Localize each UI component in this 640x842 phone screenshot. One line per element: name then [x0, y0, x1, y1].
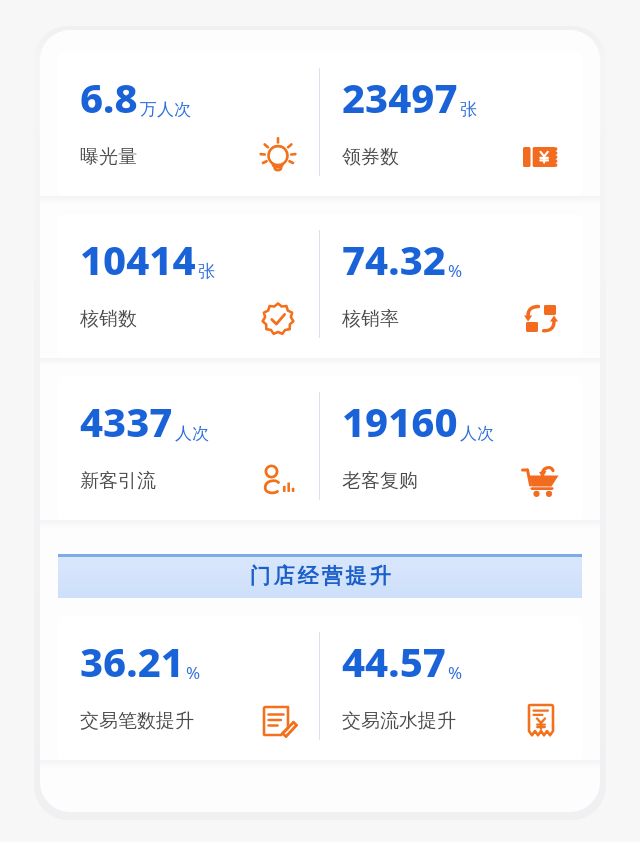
button[interactable]: 74.32: [320, 214, 582, 358]
staticText: 门店经营提升: [248, 563, 392, 589]
other: 核销数: [255, 296, 301, 342]
staticText: 10414: [80, 232, 196, 286]
staticText: 44.57: [342, 634, 446, 688]
other: 交易笔数提升: [255, 698, 301, 744]
staticText: 核销率: [342, 307, 399, 331]
staticText: 23497: [342, 70, 458, 124]
staticText: 老客复购: [342, 469, 418, 493]
staticText: %: [186, 661, 201, 684]
staticText: %: [448, 259, 463, 282]
staticText: 6.8: [80, 70, 138, 124]
other: 核销率: [518, 296, 564, 342]
button[interactable]: 36.21: [58, 616, 319, 760]
staticText: 曝光量: [80, 145, 137, 169]
staticText: 万人次: [140, 99, 191, 120]
staticText: 张: [198, 261, 215, 282]
other: 交易流水提升: [518, 698, 564, 744]
button[interactable]: 6.8: [58, 52, 319, 196]
button[interactable]: 10414: [58, 214, 319, 358]
staticText: 19160: [342, 394, 458, 448]
other: 老客复购: [518, 458, 564, 504]
staticText: 领券数: [342, 145, 399, 169]
button[interactable]: 23497: [320, 52, 582, 196]
staticText: 4337: [80, 394, 173, 448]
staticText: 人次: [175, 423, 209, 444]
staticText: 36.21: [80, 634, 184, 688]
other: 曝光量: [255, 134, 301, 180]
staticText: 人次: [460, 423, 494, 444]
button[interactable]: 19160: [320, 376, 582, 520]
staticText: %: [448, 661, 463, 684]
staticText: 交易流水提升: [342, 709, 456, 733]
button[interactable]: 4337: [58, 376, 319, 520]
staticText: 核销数: [80, 307, 137, 331]
staticText: 新客引流: [80, 469, 156, 493]
other: 领券数: [518, 134, 564, 180]
other: 新客引流: [255, 458, 301, 504]
button[interactable]: 门店经营提升: [58, 554, 582, 598]
staticText: 张: [460, 99, 477, 120]
button[interactable]: 44.57: [320, 616, 582, 760]
staticText: 交易笔数提升: [80, 709, 194, 733]
staticText: 74.32: [342, 232, 446, 286]
